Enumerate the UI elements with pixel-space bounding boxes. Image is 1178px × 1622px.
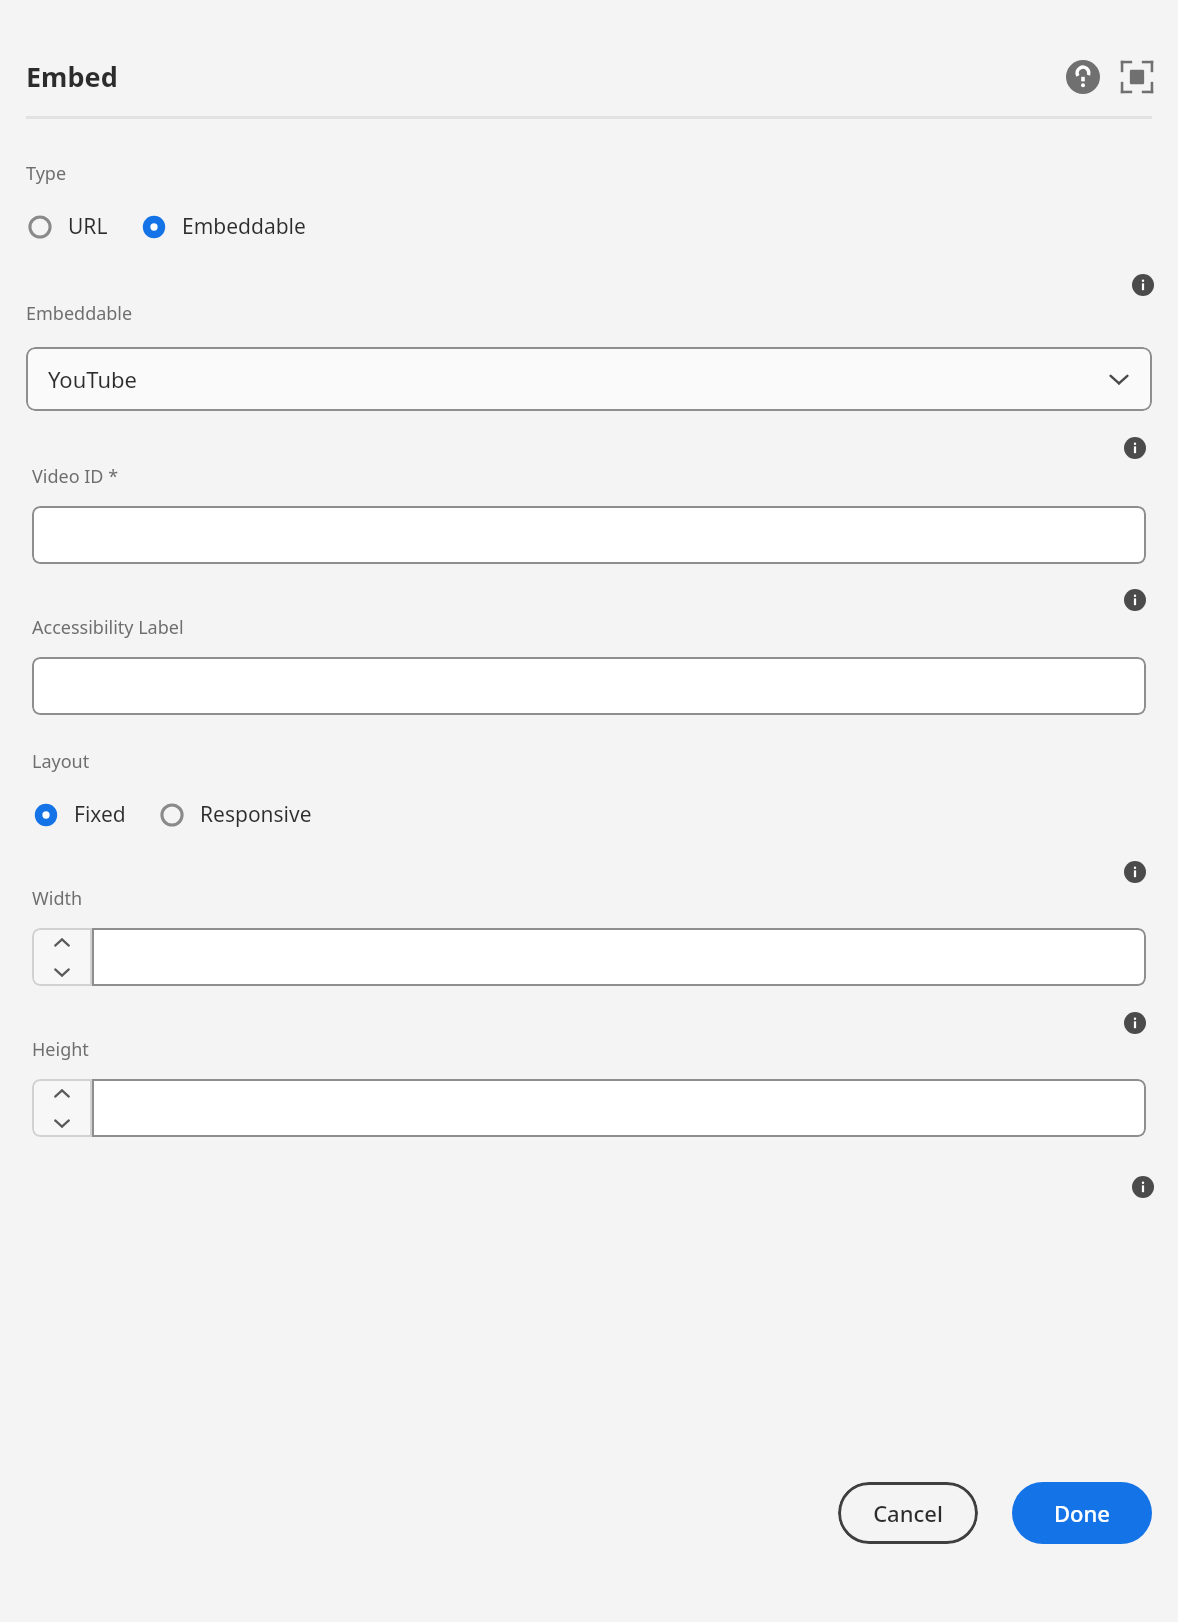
staticText: Embed (26, 58, 118, 95)
staticText: Video ID * (32, 464, 119, 489)
button[interactable]: More information (1124, 861, 1146, 883)
button[interactable]: Fixed (32, 796, 126, 833)
button[interactable]: Responsive (158, 796, 312, 833)
button[interactable]: Done (1012, 1482, 1152, 1544)
button[interactable]: More information (1132, 1176, 1154, 1198)
staticText: Embeddable (182, 212, 306, 241)
button[interactable]: Increase (32, 928, 92, 957)
button[interactable]: More information (1132, 274, 1154, 296)
button[interactable]: More information (1124, 589, 1146, 611)
staticText: Height (32, 1037, 89, 1062)
button[interactable]: Decrease (32, 1108, 92, 1137)
staticText: Layout (32, 749, 90, 774)
staticText: Fixed (74, 800, 126, 829)
staticText: Type (26, 161, 67, 186)
button[interactable]: Help (1066, 60, 1100, 94)
button[interactable] (32, 506, 1146, 564)
button[interactable] (32, 657, 1146, 715)
button[interactable]: More information (1124, 1012, 1146, 1034)
staticText: Done (1054, 1498, 1110, 1528)
staticText: URL (68, 212, 108, 241)
button[interactable]: Increase (32, 1079, 92, 1108)
button[interactable] (92, 1079, 1146, 1137)
staticText: Embeddable (26, 301, 133, 326)
button[interactable]: Cancel (838, 1482, 978, 1544)
button[interactable] (92, 928, 1146, 986)
staticText: Width (32, 886, 83, 911)
staticText: Responsive (200, 800, 312, 829)
button[interactable]: Fullscreen (1120, 60, 1154, 94)
button[interactable]: More information (1124, 437, 1146, 459)
staticText: Cancel (873, 1498, 943, 1528)
staticText: YouTube (48, 364, 137, 394)
button[interactable]: Decrease (32, 957, 92, 986)
button[interactable]: Embeddable (140, 208, 306, 245)
button[interactable]: YouTube (26, 347, 1152, 411)
button[interactable]: URL (26, 208, 108, 245)
staticText: Accessibility Label (32, 615, 184, 640)
